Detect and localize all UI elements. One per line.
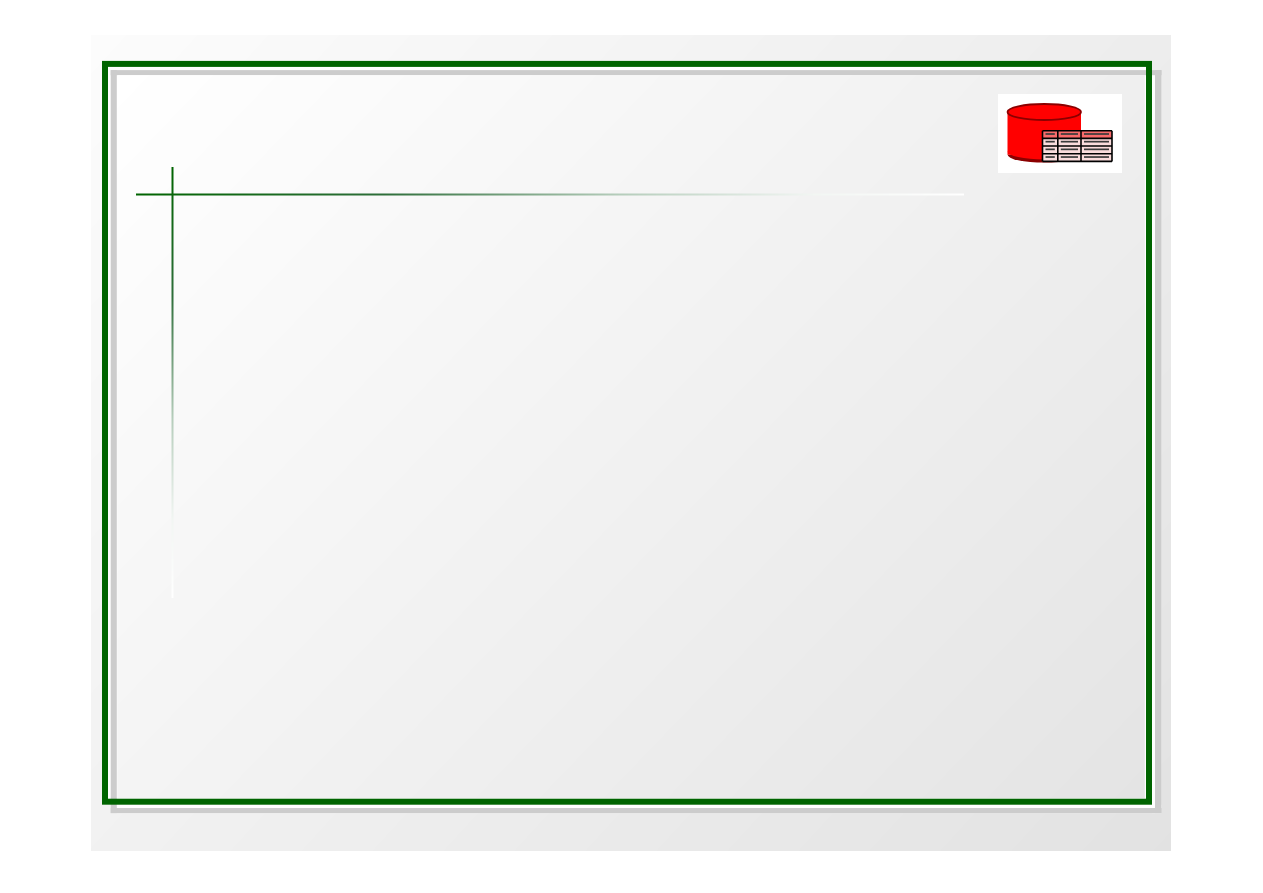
button[interactable]: Slide canvas	[0, 0, 1263, 893]
button[interactable]: Database table shape	[998, 94, 1122, 173]
